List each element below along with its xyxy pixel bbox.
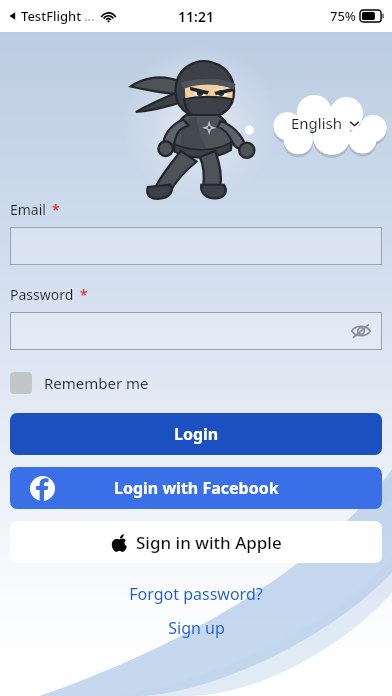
- staticText: 75%: [330, 7, 356, 25]
- staticText: Sign up: [168, 617, 225, 639]
- button[interactable]: Show password: [348, 318, 374, 344]
- staticText: ...: [84, 7, 95, 25]
- staticText: Email: [10, 200, 46, 219]
- button[interactable]: English: [258, 90, 392, 156]
- button[interactable]: Sign in with Apple: [10, 521, 382, 563]
- staticText: Login with Facebook: [114, 477, 279, 499]
- button[interactable]: Show password: [10, 312, 382, 350]
- button[interactable]: Login: [10, 413, 382, 455]
- staticText: Remember me: [44, 373, 149, 393]
- staticText: *: [52, 200, 60, 219]
- button[interactable]: Sign up: [10, 617, 382, 639]
- staticText: Password: [10, 285, 74, 304]
- staticText: TestFlight: [21, 7, 82, 25]
- staticText: Login: [174, 423, 219, 445]
- staticText: *: [80, 285, 88, 304]
- button[interactable]: Login with Facebook: [10, 467, 382, 509]
- staticText: Forgot password?: [129, 583, 263, 605]
- staticText: English: [291, 113, 343, 133]
- button[interactable]: Forgot password?: [10, 583, 382, 605]
- staticText: 11:21: [178, 7, 214, 26]
- button[interactable]: Remember me: [10, 372, 149, 394]
- button[interactable]: [10, 227, 382, 265]
- staticText: Sign in with Apple: [136, 531, 282, 554]
